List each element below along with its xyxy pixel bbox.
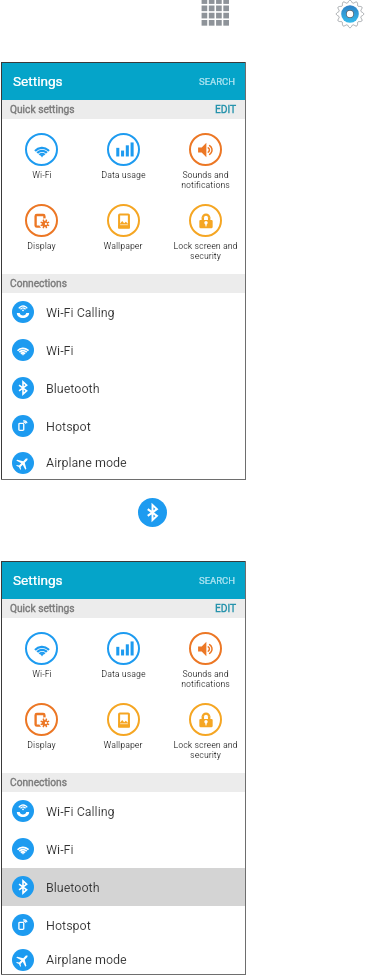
button[interactable]: Wi-Fi — [1, 119, 82, 196]
button[interactable]: EDIT — [209, 603, 246, 615]
staticText: Quick settings — [10, 603, 75, 615]
button[interactable]: Wi-Fi Calling — [1, 293, 246, 331]
staticText: Hotspot — [46, 918, 91, 933]
button[interactable]: Wi-Fi — [1, 618, 82, 695]
button[interactable]: Bluetooth — [1, 868, 246, 906]
button[interactable]: Display — [1, 695, 82, 773]
button[interactable]: Hotspot — [1, 906, 246, 944]
button[interactable]: Bluetooth — [1, 369, 246, 407]
staticText: Wallpaper — [103, 241, 143, 251]
staticText: Hotspot — [46, 419, 91, 434]
staticText: Lock screen and security — [173, 241, 238, 261]
staticText: Quick settings — [10, 104, 75, 116]
staticText: Wi-Fi — [32, 669, 52, 679]
staticText: Wi-Fi — [46, 343, 74, 358]
staticText: Display — [27, 241, 56, 251]
button[interactable]: Data usage — [82, 618, 164, 695]
staticText: SEARCH — [199, 76, 236, 87]
button[interactable]: Settings — [336, 0, 364, 28]
staticText: Sounds and notifications — [181, 170, 230, 190]
staticText: Airplane mode — [46, 455, 127, 470]
staticText: Airplane mode — [46, 952, 127, 967]
staticText: Connections — [10, 777, 67, 789]
staticText: Wi-Fi Calling — [46, 804, 115, 819]
button[interactable]: Wallpaper — [82, 196, 164, 274]
button[interactable]: Settings — [1, 62, 246, 100]
staticText: Bluetooth — [46, 880, 100, 895]
staticText: Wi-Fi — [46, 842, 74, 857]
button[interactable]: SEARCH — [193, 575, 246, 586]
button[interactable]: Data usage — [82, 119, 164, 196]
button[interactable]: EDIT — [209, 104, 246, 116]
button[interactable]: Bluetooth — [138, 498, 167, 527]
staticText: Wallpaper — [103, 740, 143, 750]
button[interactable]: SEARCH — [193, 76, 246, 87]
button[interactable]: Airplane mode — [1, 944, 246, 975]
button[interactable]: Settings — [1, 561, 246, 599]
button[interactable]: Sounds and notifications — [164, 618, 246, 695]
staticText: Wi-Fi Calling — [46, 305, 115, 320]
button[interactable]: Hotspot — [1, 407, 246, 445]
staticText: Display — [27, 740, 56, 750]
staticText: Sounds and notifications — [181, 669, 230, 689]
button[interactable]: Lock screen and security — [164, 695, 246, 773]
button[interactable]: Airplane mode — [1, 445, 246, 480]
button[interactable]: Wi-Fi Calling — [1, 792, 246, 830]
staticText: Settings — [13, 572, 63, 588]
staticText: Data usage — [101, 669, 146, 679]
button[interactable]: Apps — [201, 0, 230, 29]
button[interactable]: Display — [1, 196, 82, 274]
button[interactable]: Lock screen and security — [164, 196, 246, 274]
staticText: EDIT — [215, 104, 237, 116]
button[interactable]: Wallpaper — [82, 695, 164, 773]
staticText: Connections — [10, 278, 67, 290]
staticText: SEARCH — [199, 575, 236, 586]
button[interactable]: Sounds and notifications — [164, 119, 246, 196]
staticText: Bluetooth — [46, 381, 100, 396]
staticText: Wi-Fi — [32, 170, 52, 180]
staticText: Settings — [13, 73, 63, 89]
staticText: Lock screen and security — [173, 740, 238, 760]
staticText: EDIT — [215, 603, 237, 615]
staticText: Data usage — [101, 170, 146, 180]
button[interactable]: Wi-Fi — [1, 830, 246, 868]
button[interactable]: Wi-Fi — [1, 331, 246, 369]
